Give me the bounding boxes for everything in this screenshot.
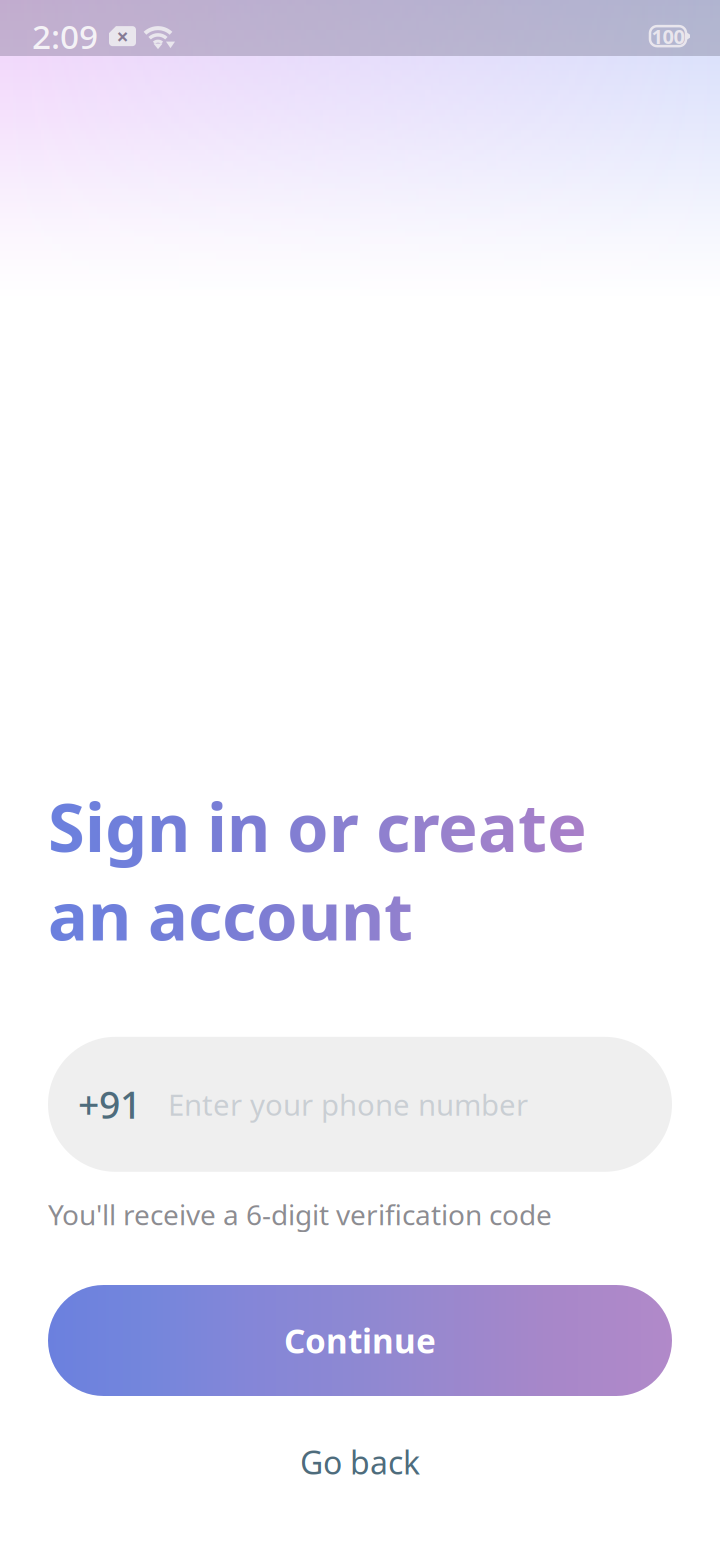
button[interactable]: +91 — [48, 1037, 672, 1172]
staticText: × — [116, 22, 128, 50]
button[interactable]: Continue — [48, 1285, 672, 1396]
staticText: Continue — [284, 1318, 436, 1363]
staticText: 100 — [651, 23, 684, 49]
button[interactable]: Go back — [48, 1432, 672, 1492]
staticText: Sign in or create an account — [48, 782, 587, 959]
staticText: +91 — [78, 1079, 141, 1129]
staticText: Enter your phone number — [168, 1085, 528, 1124]
staticText: 2:09 — [32, 14, 98, 58]
staticText: You'll receive a 6-digit verification co… — [48, 1196, 552, 1233]
staticText: Go back — [300, 1441, 420, 1483]
